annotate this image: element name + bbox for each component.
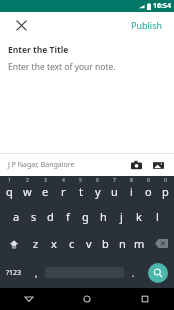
staticText: n (119, 236, 126, 251)
button[interactable]: a (8, 203, 25, 230)
button[interactable]: l (148, 203, 166, 230)
staticText: j (120, 209, 123, 224)
staticText: z (33, 236, 39, 251)
staticText: v (86, 236, 92, 251)
staticText: r (61, 184, 66, 199)
staticText: g (82, 209, 89, 224)
button[interactable]: f (59, 203, 76, 230)
button[interactable]: Camera (126, 155, 146, 175)
button[interactable]: 8 (123, 176, 140, 203)
staticText: b (102, 236, 109, 251)
staticText: . (132, 267, 135, 279)
button[interactable]: m (131, 230, 148, 257)
button[interactable]: n (114, 230, 131, 257)
button[interactable]: Shift (0, 230, 27, 257)
button[interactable]: , (28, 257, 44, 288)
button[interactable]: Gallery (148, 155, 168, 175)
button[interactable]: 3 (36, 176, 54, 203)
button[interactable]: 1 (0, 176, 18, 203)
button[interactable]: Search (141, 257, 174, 288)
button[interactable]: 2 (18, 176, 36, 203)
staticText: 6 (96, 177, 99, 184)
button[interactable]: k (130, 203, 148, 230)
button[interactable]: v (80, 230, 97, 257)
staticText: 9 (147, 177, 150, 184)
staticText: 2 (26, 177, 29, 184)
staticText: 3 (44, 177, 47, 184)
button[interactable]: 9 (140, 176, 157, 203)
staticText: m (134, 236, 145, 251)
staticText: 5 (79, 177, 82, 184)
staticText: u (111, 184, 118, 199)
button[interactable]: s (25, 203, 42, 230)
staticText: p (162, 184, 169, 199)
staticText: e (42, 184, 49, 199)
staticText: a (13, 209, 20, 224)
staticText: 7 (113, 177, 116, 184)
staticText: x (51, 236, 57, 251)
staticText: i (130, 184, 133, 199)
staticText: d (47, 209, 54, 224)
staticText: 16:54 (153, 1, 171, 11)
staticText: h (100, 209, 107, 224)
staticText: k (136, 209, 142, 224)
staticText: c (69, 236, 75, 251)
staticText: s (31, 209, 37, 224)
staticText: 8 (130, 177, 133, 184)
button[interactable]: ?123 (0, 257, 28, 288)
button[interactable]: 0 (157, 176, 174, 203)
staticText: w (23, 184, 32, 199)
button[interactable]: Recents (116, 288, 174, 310)
staticText: , (35, 267, 38, 279)
staticText: f (66, 209, 70, 224)
button[interactable]: h (94, 203, 112, 230)
staticText: ?123 (6, 268, 22, 278)
staticText: 1 (8, 177, 11, 184)
staticText: Enter the Title (8, 44, 69, 56)
button[interactable]: . (125, 257, 141, 288)
button[interactable]: c (63, 230, 80, 257)
button[interactable]: j (112, 203, 130, 230)
staticText: t (79, 184, 83, 199)
button[interactable]: Back (0, 288, 58, 310)
button[interactable]: b (97, 230, 114, 257)
button[interactable] (44, 257, 125, 288)
button[interactable]: z (27, 230, 45, 257)
staticText: y (95, 184, 101, 199)
staticText: Publish (131, 19, 163, 31)
button[interactable]: J P Nagar, Bangalore (0, 160, 126, 170)
button[interactable]: Home (58, 288, 116, 310)
button[interactable]: 5 (72, 176, 89, 203)
staticText: o (145, 184, 152, 199)
staticText: J P Nagar, Bangalore (8, 160, 75, 170)
staticText: q (6, 184, 13, 199)
staticText: l (156, 209, 159, 224)
button[interactable]: d (42, 203, 59, 230)
button[interactable]: 7 (106, 176, 123, 203)
button[interactable]: x (45, 230, 63, 257)
staticText: 0 (164, 177, 167, 184)
button[interactable]: Publish (120, 13, 174, 37)
button[interactable]: 4 (54, 176, 72, 203)
button[interactable]: g (76, 203, 94, 230)
button[interactable]: 6 (89, 176, 106, 203)
staticText: 4 (62, 177, 65, 184)
staticText: Enter the text of your note. (8, 61, 116, 73)
button[interactable]: Close (12, 16, 30, 34)
button[interactable]: Backspace (148, 230, 174, 257)
